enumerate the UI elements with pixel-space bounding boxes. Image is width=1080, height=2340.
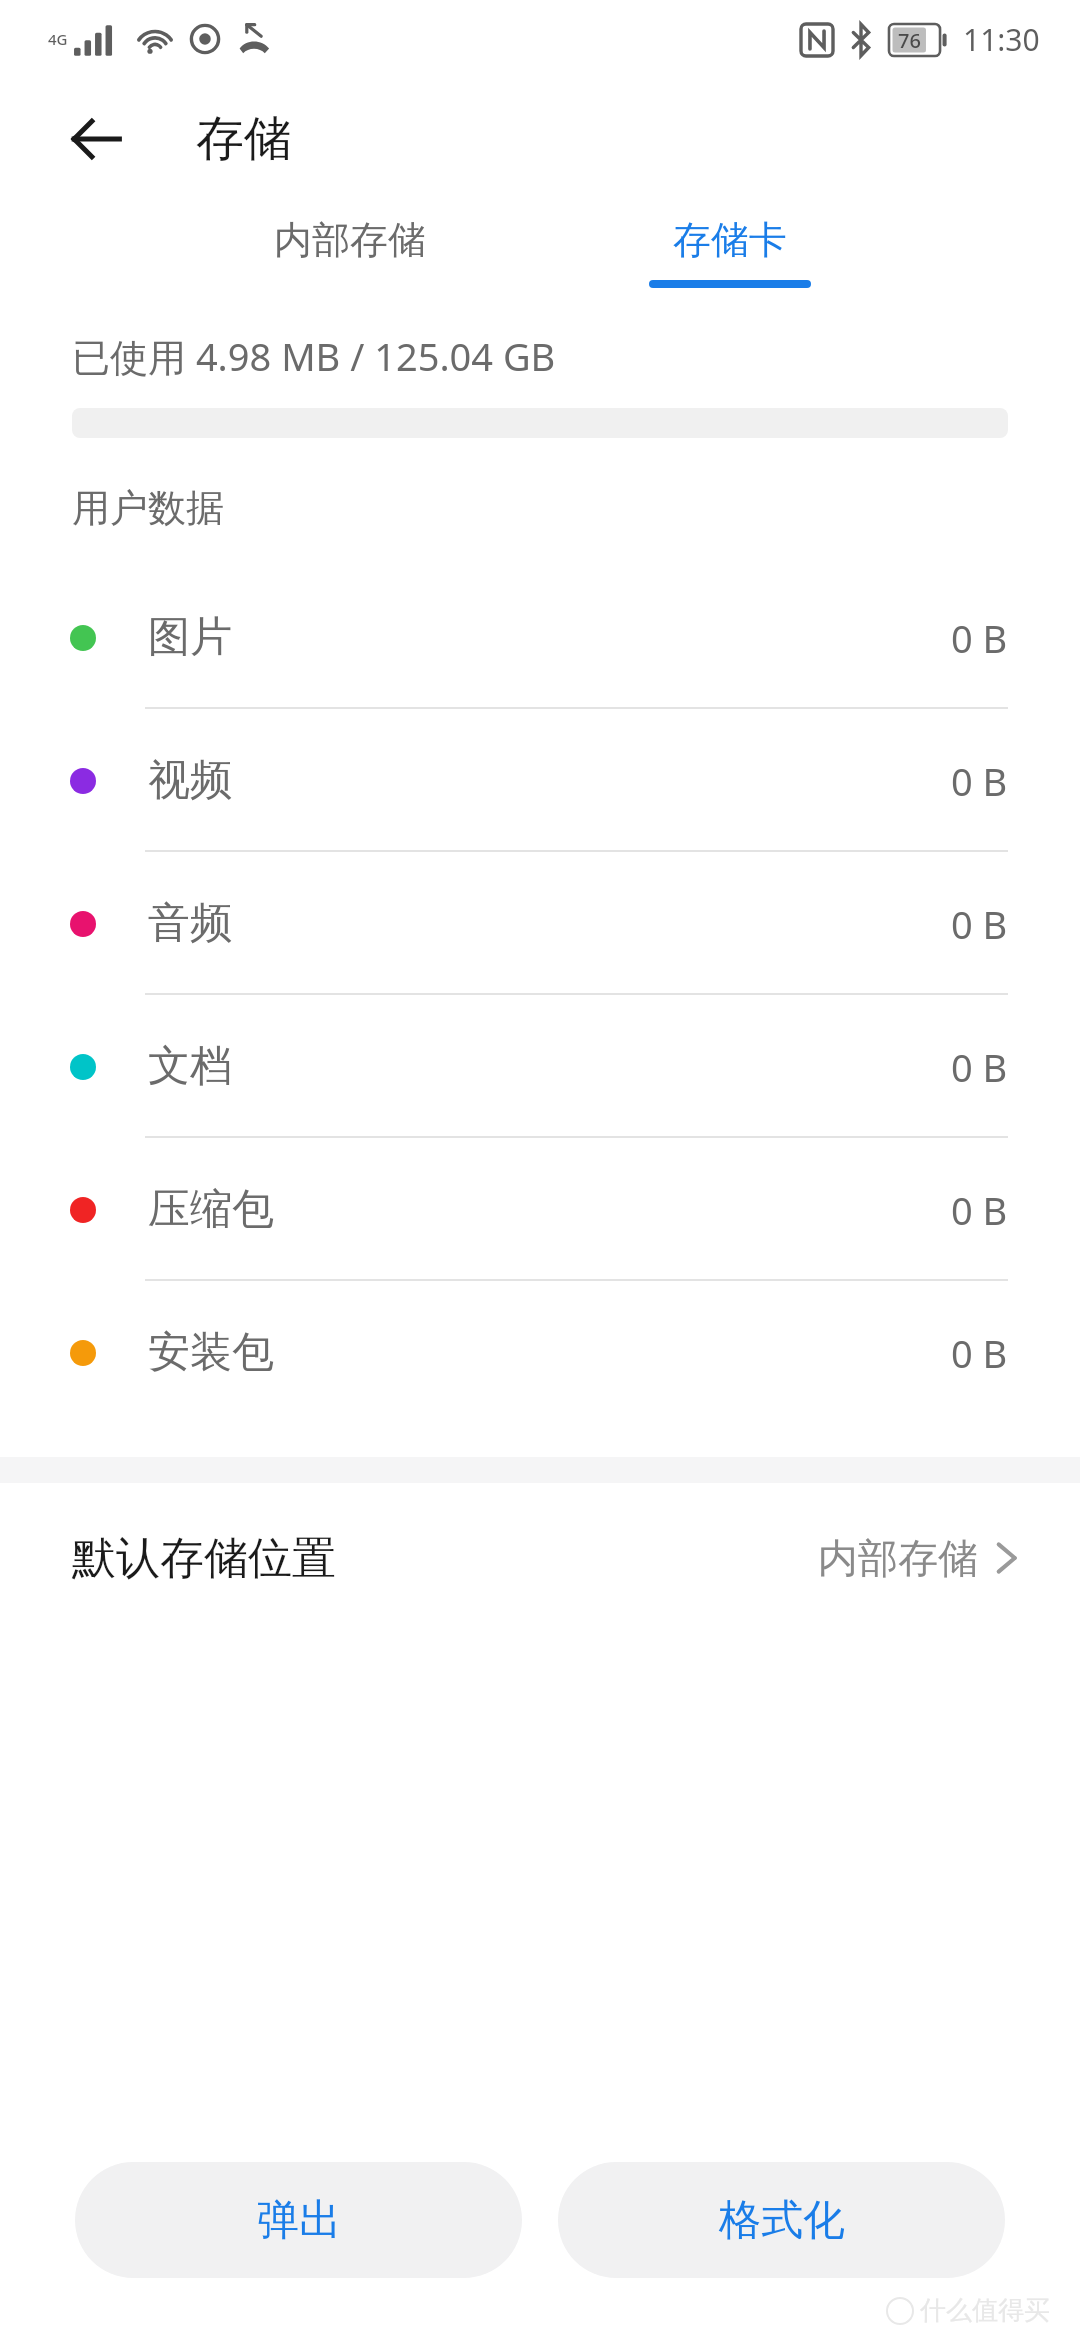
- button[interactable]: 压缩包: [0, 1138, 1080, 1281]
- button[interactable]: 安装包: [0, 1281, 1080, 1424]
- staticText: 已使用 4.98 MB / 125.04 GB: [72, 330, 556, 382]
- staticText: 图片: [148, 611, 232, 664]
- button[interactable]: 视频: [0, 709, 1080, 852]
- staticText: 0 B: [951, 1041, 1008, 1093]
- button[interactable]: 弹出: [75, 2162, 522, 2278]
- button[interactable]: 格式化: [558, 2162, 1005, 2278]
- button[interactable]: 存储卡: [540, 200, 920, 310]
- staticText: 安装包: [148, 1326, 274, 1379]
- staticText: 音频: [148, 897, 232, 950]
- staticText: 格式化: [719, 2194, 845, 2247]
- staticText: 内部存储: [274, 216, 426, 264]
- staticText: 11:30: [963, 19, 1040, 60]
- staticText: 默认存储位置: [72, 1531, 336, 1586]
- button[interactable]: 音频: [0, 852, 1080, 995]
- button[interactable]: 默认存储位置: [0, 1483, 1080, 1633]
- staticText: 存储: [196, 109, 292, 169]
- staticText: 视频: [148, 754, 232, 807]
- staticText: 压缩包: [148, 1183, 274, 1236]
- staticText: 0 B: [951, 755, 1008, 807]
- staticText: 文档: [148, 1040, 232, 1093]
- button[interactable]: 图片: [0, 566, 1080, 709]
- staticText: 0 B: [951, 1327, 1008, 1379]
- staticText: 内部存储: [818, 1533, 978, 1583]
- staticText: 弹出: [257, 2194, 341, 2247]
- staticText: 76: [898, 27, 921, 54]
- staticText: 0 B: [951, 1184, 1008, 1236]
- staticText: 0 B: [951, 898, 1008, 950]
- button[interactable]: 内部存储: [160, 200, 540, 310]
- staticText: 什么值得买: [920, 2294, 1050, 2327]
- button[interactable]: 文档: [0, 995, 1080, 1138]
- staticText: 4G: [48, 29, 68, 49]
- staticText: 用户数据: [72, 484, 224, 532]
- staticText: 存储卡: [673, 216, 787, 264]
- staticText: 0 B: [951, 612, 1008, 664]
- button[interactable]: 返回: [48, 91, 144, 187]
